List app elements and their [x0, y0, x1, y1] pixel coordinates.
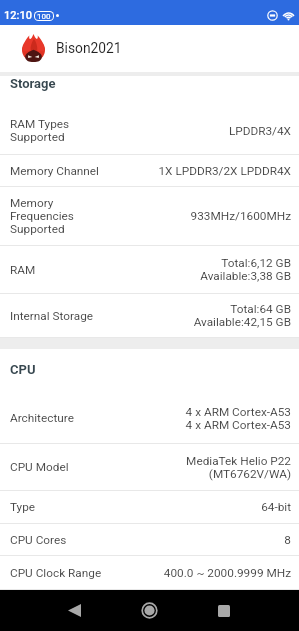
button[interactable]: Internal Storage	[0, 294, 299, 337]
button[interactable]: Back	[52, 590, 96, 631]
button[interactable]: RAM Types Supported	[0, 107, 299, 154]
staticText: 8	[284, 533, 291, 547]
staticText: 400.0 ~ 2000.9999 MHz	[163, 566, 291, 580]
button[interactable]: Home	[127, 590, 171, 631]
button[interactable]: Memory Channel	[0, 155, 299, 186]
staticText: 4 x ARM Cortex-A53 4 x ARM Cortex-A53	[185, 405, 291, 432]
staticText: CPU Clock Range	[10, 566, 163, 580]
staticText: MediaTek Helio P22 (MT6762V/WA)	[186, 454, 291, 481]
staticText: Memory Frequencies Supported	[10, 196, 190, 236]
staticText: 1X LPDDR3/2X LPDDR4X	[158, 164, 291, 178]
staticText: 100	[37, 12, 51, 20]
staticText: Type	[10, 500, 261, 514]
button[interactable]: CPU Clock Range	[0, 556, 299, 589]
staticText: CPU Model	[10, 460, 186, 474]
staticText: Total:64 GB Available:42,15 GB	[193, 302, 291, 329]
staticText: 12:10	[4, 9, 32, 22]
button[interactable]: Recent apps	[202, 590, 246, 631]
button[interactable]: CPU Cores	[0, 524, 299, 555]
button[interactable]: Type	[0, 491, 299, 523]
staticText: CPU	[10, 362, 36, 377]
button[interactable]: Bison2021	[0, 25, 299, 72]
staticText: Memory Channel	[10, 164, 158, 178]
button[interactable]: Architecture	[0, 393, 299, 443]
staticText: Total:6,12 GB Available:3,38 GB	[200, 256, 291, 283]
staticText: 933MHz/1600MHz	[190, 209, 291, 223]
button[interactable]: RAM	[0, 246, 299, 293]
staticText: LPDDR3/4X	[228, 124, 291, 138]
button[interactable]: CPU Model	[0, 444, 299, 490]
staticText: RAM	[10, 263, 200, 277]
button[interactable]: Memory Frequencies Supported	[0, 187, 299, 245]
staticText: Internal Storage	[10, 309, 193, 323]
staticText: RAM Types Supported	[10, 117, 228, 144]
staticText: CPU Cores	[10, 533, 284, 547]
staticText: 64-bit	[261, 500, 291, 514]
staticText: Storage	[10, 76, 56, 91]
staticText: Architecture	[10, 411, 185, 425]
staticText: Bison2021	[56, 40, 122, 56]
